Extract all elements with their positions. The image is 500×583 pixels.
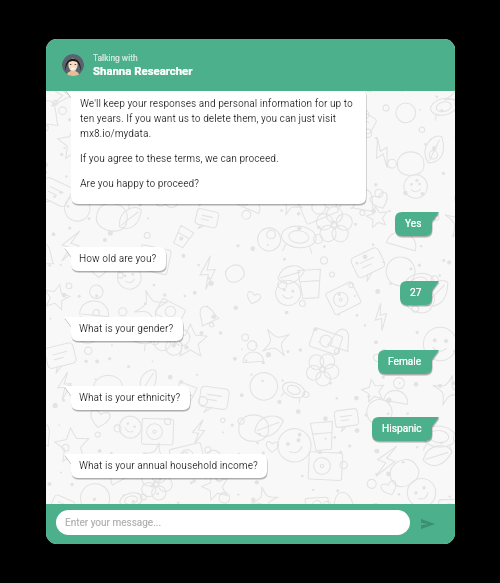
staticText: Enter your message... [65, 517, 162, 529]
button[interactable]: We'll keep your responses and personal i… [64, 88, 366, 204]
staticText: Shanna Researcher [93, 64, 193, 77]
staticText: Are you happy to proceed? [80, 175, 200, 190]
staticText: Yes [405, 218, 422, 230]
staticText: What is your gender? [79, 323, 174, 335]
staticText: How old are you? [79, 253, 157, 265]
button[interactable]: What is your annual household income? [64, 454, 267, 478]
button[interactable]: Send [412, 508, 443, 539]
staticText: What is your ethnicity? [79, 392, 181, 404]
button[interactable]: What is your gender? [64, 317, 183, 341]
button[interactable]: Yes [395, 212, 439, 236]
button[interactable]: Hispanic [372, 417, 439, 441]
button[interactable]: Talking with [46, 39, 455, 91]
staticText: 27 [410, 287, 422, 299]
staticText: Hispanic [382, 423, 422, 435]
button[interactable]: Female [378, 350, 439, 374]
button[interactable]: How old are you? [64, 247, 166, 271]
button[interactable]: Enter your message... [56, 510, 410, 535]
staticText: If you agree to these terms, we can proc… [80, 150, 279, 165]
staticText: What is your annual household income? [79, 460, 258, 472]
button[interactable]: What is your ethnicity? [64, 386, 190, 410]
staticText: Talking with [93, 53, 138, 63]
staticText: We'll keep your responses and personal i… [80, 95, 357, 140]
staticText: Female [388, 356, 422, 368]
button[interactable]: 27 [400, 281, 439, 305]
